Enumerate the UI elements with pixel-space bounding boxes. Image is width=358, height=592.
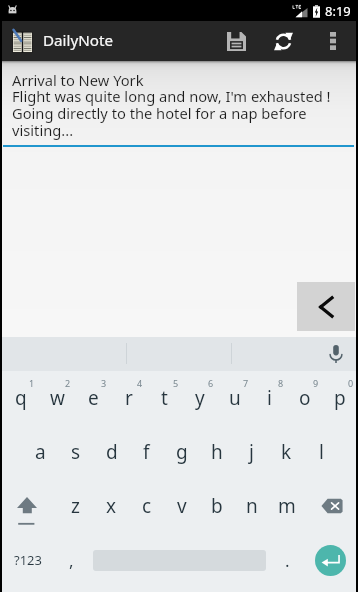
button[interactable]: 1 bbox=[3, 371, 39, 425]
button[interactable]: h bbox=[199, 425, 234, 479]
staticText: e bbox=[88, 385, 99, 411]
button[interactable]: 9 bbox=[287, 371, 322, 425]
button[interactable]: ?123 bbox=[3, 533, 52, 587]
button[interactable]: g bbox=[164, 425, 199, 479]
staticText: p bbox=[334, 385, 346, 411]
button[interactable]: Backspace bbox=[304, 479, 357, 533]
staticText: m bbox=[278, 493, 296, 519]
staticText: g bbox=[176, 439, 188, 465]
button[interactable]: Save bbox=[213, 21, 260, 61]
staticText: k bbox=[281, 439, 292, 465]
button[interactable]: m bbox=[269, 479, 304, 533]
staticText: n bbox=[246, 493, 258, 519]
staticText: 5 bbox=[173, 377, 179, 389]
button[interactable]: 6 bbox=[182, 371, 217, 425]
button[interactable]: More options bbox=[307, 21, 358, 61]
staticText: r bbox=[125, 385, 133, 411]
staticText: t bbox=[161, 385, 168, 411]
staticText: q bbox=[15, 385, 27, 411]
staticText: w bbox=[50, 385, 65, 411]
button[interactable]: x bbox=[93, 479, 129, 533]
button[interactable]: c bbox=[129, 479, 164, 533]
button[interactable]: a bbox=[22, 425, 58, 479]
button[interactable]: 5 bbox=[147, 371, 182, 425]
staticText: 1 bbox=[29, 377, 35, 389]
button[interactable]: k bbox=[269, 425, 304, 479]
button[interactable]: Sync bbox=[260, 21, 307, 61]
button[interactable]: s bbox=[58, 425, 94, 479]
staticText: 6 bbox=[208, 377, 214, 389]
button[interactable]: f bbox=[129, 425, 164, 479]
button[interactable]: 7 bbox=[217, 371, 252, 425]
staticText: ?123 bbox=[14, 551, 42, 569]
button[interactable]: 3 bbox=[75, 371, 111, 425]
staticText: 8 bbox=[278, 377, 284, 389]
staticText: 9 bbox=[313, 377, 319, 389]
staticText: 4 bbox=[137, 377, 143, 389]
staticText: f bbox=[143, 439, 150, 465]
button[interactable]: d bbox=[94, 425, 129, 479]
staticText: d bbox=[106, 439, 118, 465]
staticText: b bbox=[211, 493, 223, 519]
button[interactable]: z bbox=[57, 479, 93, 533]
staticText: 3 bbox=[101, 377, 107, 389]
staticText: 8:19 bbox=[325, 2, 351, 20]
button[interactable]: , bbox=[52, 533, 91, 587]
staticText: u bbox=[229, 385, 241, 411]
staticText: , bbox=[69, 549, 74, 572]
button[interactable]: n bbox=[234, 479, 269, 533]
staticText: v bbox=[177, 493, 187, 519]
staticText: 7 bbox=[243, 377, 249, 389]
staticText: DailyNote bbox=[43, 30, 113, 51]
button[interactable]: j bbox=[234, 425, 269, 479]
button[interactable] bbox=[91, 533, 268, 587]
staticText: h bbox=[211, 439, 223, 465]
staticText: a bbox=[35, 439, 46, 465]
staticText: z bbox=[71, 493, 80, 519]
button[interactable]: Voice input bbox=[323, 341, 349, 367]
staticText: y bbox=[195, 385, 205, 411]
button[interactable]: v bbox=[164, 479, 199, 533]
staticText: 0 bbox=[348, 377, 354, 389]
button[interactable]: 4 bbox=[111, 371, 147, 425]
staticText: Arrival to New York Flight was quite lon… bbox=[12, 70, 354, 141]
button[interactable]: 8 bbox=[252, 371, 287, 425]
button[interactable]: 2 bbox=[39, 371, 75, 425]
button[interactable]: . bbox=[268, 533, 307, 587]
staticText: . bbox=[285, 549, 290, 572]
button[interactable]: b bbox=[199, 479, 234, 533]
staticText: i bbox=[267, 385, 272, 411]
button[interactable]: 0 bbox=[322, 371, 357, 425]
staticText: j bbox=[249, 439, 254, 465]
button[interactable]: l bbox=[304, 425, 339, 479]
button[interactable]: Shift bbox=[3, 479, 57, 533]
staticText: o bbox=[299, 385, 311, 411]
staticText: 2 bbox=[65, 377, 71, 389]
staticText: s bbox=[71, 439, 81, 465]
staticText: l bbox=[319, 439, 324, 465]
button[interactable]: Back bbox=[297, 282, 355, 331]
staticText: c bbox=[142, 493, 152, 519]
button[interactable]: Enter bbox=[307, 533, 357, 587]
staticText: x bbox=[106, 493, 117, 519]
